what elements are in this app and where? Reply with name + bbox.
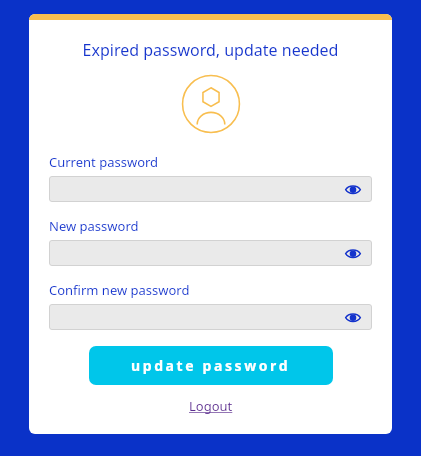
button[interactable]: Show password bbox=[344, 308, 362, 326]
button[interactable]: Show password bbox=[49, 240, 372, 266]
button[interactable]: Show password bbox=[49, 176, 372, 202]
staticText: Confirm new password bbox=[49, 281, 190, 299]
button[interactable]: Show password bbox=[344, 180, 362, 198]
staticText: New password bbox=[49, 217, 139, 235]
staticText: Expired password, update needed bbox=[29, 39, 392, 61]
staticText: update password bbox=[131, 356, 291, 375]
button[interactable]: Logout bbox=[185, 393, 237, 419]
button[interactable]: Show password bbox=[49, 304, 372, 330]
staticText: Current password bbox=[49, 153, 159, 171]
button[interactable]: Show password bbox=[344, 244, 362, 262]
button[interactable]: update password bbox=[89, 346, 333, 385]
staticText: Logout bbox=[189, 397, 233, 415]
